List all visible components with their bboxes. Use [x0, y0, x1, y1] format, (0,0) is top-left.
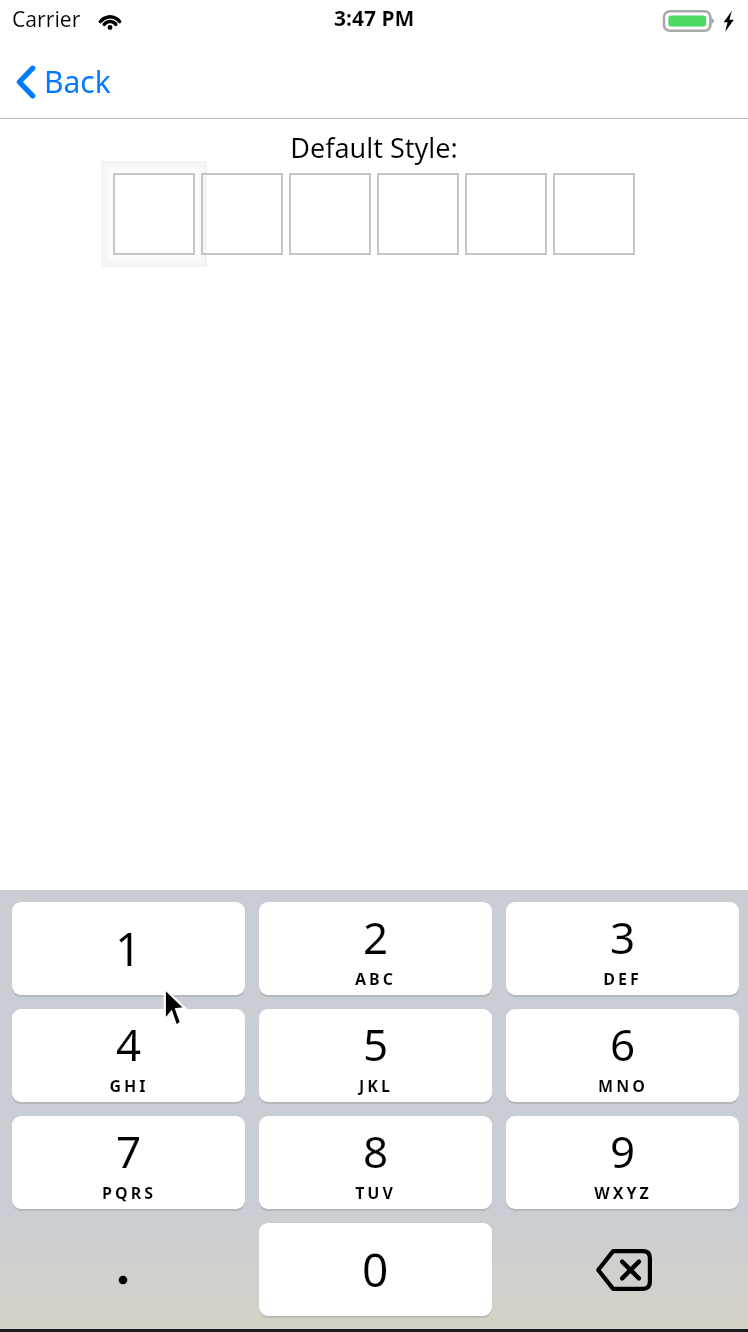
staticText: ABC [355, 968, 396, 990]
button[interactable]: 7 [12, 1116, 245, 1209]
staticText: MNO [598, 1075, 648, 1097]
staticText: Default Style: [0, 129, 748, 166]
staticText: 5 [363, 1014, 389, 1074]
staticText: 3 [610, 907, 636, 967]
button[interactable]: Digit field 6 [554, 174, 634, 254]
staticText: JKL [359, 1075, 393, 1097]
button[interactable]: 5 [259, 1009, 492, 1102]
button[interactable]: 4 [12, 1009, 245, 1102]
staticText: 3:47 PM [334, 4, 415, 33]
button[interactable]: Digit field 5 [466, 174, 546, 254]
button[interactable]: Period [12, 1223, 245, 1316]
staticText: 4 [116, 1014, 142, 1074]
staticText: DEF [603, 968, 642, 990]
button[interactable]: 6 [506, 1009, 739, 1102]
button[interactable]: Digit field 3 [290, 174, 370, 254]
staticText: 6 [610, 1014, 636, 1074]
button[interactable]: 8 [259, 1116, 492, 1209]
button[interactable]: Back [10, 55, 119, 108]
staticText: WXYZ [594, 1182, 652, 1204]
button[interactable]: Digit field 1 [114, 174, 194, 254]
staticText: 0 [362, 1238, 389, 1301]
button[interactable]: 3 [506, 902, 739, 995]
button[interactable]: 2 [259, 902, 492, 995]
button[interactable]: Delete [506, 1223, 739, 1316]
staticText: 2 [363, 907, 389, 967]
button[interactable]: Digit field 2 [202, 174, 282, 254]
staticText: 8 [363, 1121, 389, 1181]
staticText: GHI [109, 1075, 149, 1097]
button[interactable]: Digit field 4 [378, 174, 458, 254]
staticText: PQRS [102, 1182, 156, 1204]
staticText: 7 [116, 1121, 142, 1181]
staticText: 9 [610, 1121, 636, 1181]
button[interactable]: 1 [12, 902, 245, 995]
staticText: 1 [115, 917, 142, 980]
button[interactable]: 0 [259, 1223, 492, 1316]
staticText: TUV [355, 1182, 396, 1204]
staticText: Back [44, 61, 111, 102]
button[interactable]: 9 [506, 1116, 739, 1209]
staticText: Carrier [12, 5, 81, 34]
